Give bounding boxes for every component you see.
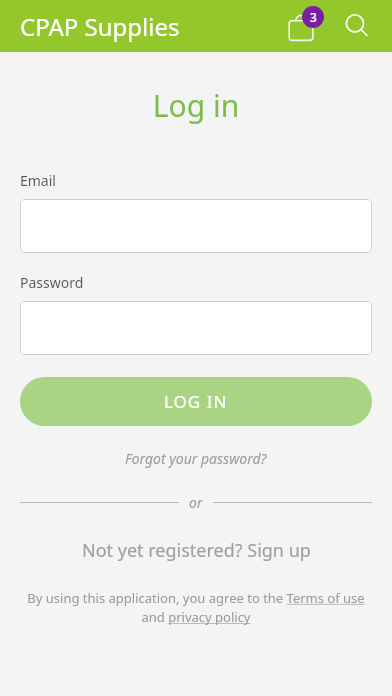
staticText: Password: [20, 273, 84, 292]
button[interactable]: [20, 301, 372, 355]
button[interactable]: [20, 199, 372, 253]
staticText: LOG IN: [164, 390, 228, 413]
button[interactable]: Search: [338, 7, 376, 45]
staticText: Forgot your password?: [125, 449, 267, 468]
button[interactable]: Forgot your password?: [20, 449, 372, 468]
button[interactable]: By using this application, you agree to …: [20, 589, 372, 626]
button[interactable]: Not yet registered? Sign up: [20, 538, 372, 563]
staticText: Not yet registered? Sign up: [82, 538, 311, 563]
staticText: or: [189, 493, 203, 512]
button[interactable]: Cart, 3 items: [284, 6, 324, 46]
staticText: 3: [310, 9, 317, 25]
button[interactable]: LOG IN: [20, 377, 372, 426]
staticText: By using this application, you agree to …: [20, 589, 372, 626]
staticText: Email: [20, 171, 56, 190]
staticText: CPAP Supplies: [20, 10, 180, 43]
staticText: Log in: [0, 85, 392, 126]
